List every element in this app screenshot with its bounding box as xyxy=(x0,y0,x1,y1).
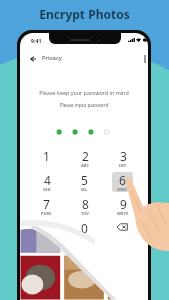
button[interactable]: 6 xyxy=(112,172,133,192)
staticText: Encrypt Photos xyxy=(0,6,169,22)
button[interactable]: More options xyxy=(135,49,148,69)
staticText: Privacy xyxy=(42,54,62,62)
staticText: 5 xyxy=(81,172,88,188)
staticText: MNO xyxy=(117,187,128,191)
staticText: Please input password xyxy=(20,102,148,108)
staticText: 2 xyxy=(82,148,89,164)
staticText: Please keep your password in mind xyxy=(20,89,148,96)
button[interactable]: 1 xyxy=(36,148,57,168)
staticText: 0 xyxy=(81,220,88,236)
staticText: ABC xyxy=(81,163,89,167)
staticText: DEF xyxy=(119,163,127,167)
staticText: GHI xyxy=(43,187,51,191)
button[interactable]: Back xyxy=(23,49,43,69)
button[interactable]: 5 xyxy=(74,172,95,192)
button[interactable]: Delete xyxy=(112,217,133,237)
button[interactable]: 0 xyxy=(74,220,95,240)
staticText: 7 xyxy=(43,196,50,212)
staticText: 9:41 xyxy=(31,37,42,44)
button[interactable]: 2 xyxy=(74,148,95,168)
staticText: 6 xyxy=(119,172,126,188)
button[interactable]: 4 xyxy=(36,172,57,192)
staticText: 9 xyxy=(120,196,127,212)
staticText: WXYZ xyxy=(117,211,129,215)
staticText: 1 xyxy=(43,148,50,164)
button[interactable]: 9 xyxy=(112,196,133,216)
button[interactable]: 7 xyxy=(36,196,57,216)
button[interactable]: 3 xyxy=(112,148,133,168)
staticText: 8 xyxy=(82,196,89,212)
staticText: JKL xyxy=(81,187,88,191)
staticText: TUV xyxy=(81,211,89,215)
staticText: 3 xyxy=(120,148,127,164)
button[interactable]: 8 xyxy=(74,196,95,216)
staticText: PQRS xyxy=(41,211,52,215)
staticText: 4 xyxy=(44,172,51,188)
